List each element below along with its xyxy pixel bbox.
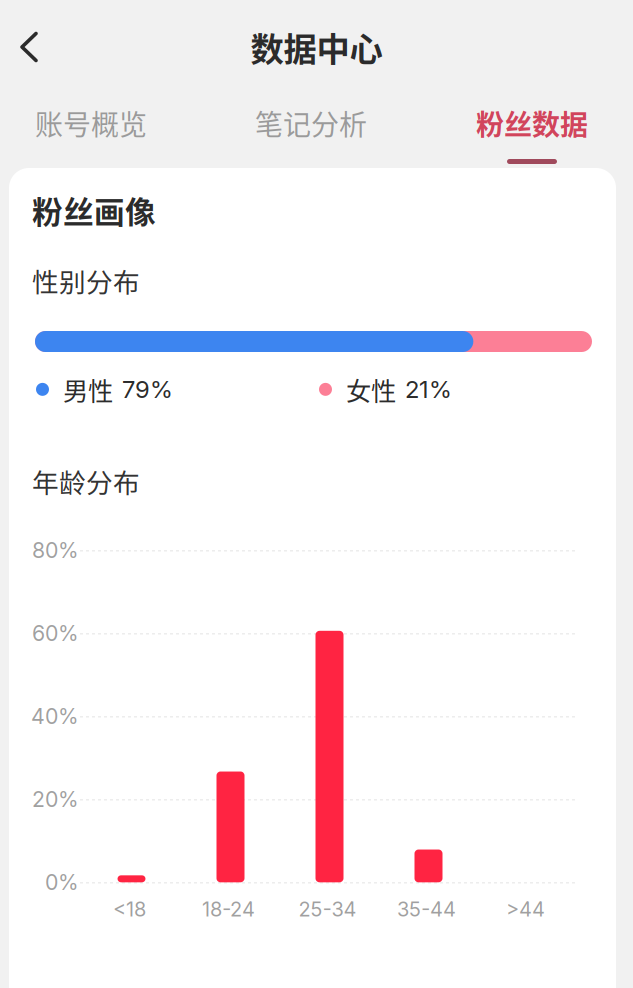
staticText: 账号概览 (35, 103, 147, 143)
staticText: <18 (113, 897, 146, 921)
staticText: 18-24 (202, 897, 255, 921)
staticText: 笔记分析 (255, 103, 367, 143)
button[interactable]: 账号概览 (16, 94, 166, 168)
staticText: 粉丝画像 (32, 188, 156, 232)
staticText: 79% (122, 375, 173, 404)
staticText: 女性 (346, 371, 396, 408)
staticText: 21% (405, 375, 452, 404)
button[interactable]: 笔记分析 (236, 94, 386, 168)
staticText: 粉丝数据 (476, 103, 588, 143)
staticText: 40% (31, 703, 79, 729)
staticText: 60% (32, 620, 79, 646)
staticText: 年龄分布 (32, 462, 140, 500)
button[interactable]: 粉丝数据 (457, 94, 607, 168)
staticText: 数据中心 (250, 23, 382, 71)
staticText: 35-44 (397, 897, 456, 921)
staticText: 0% (45, 869, 79, 895)
staticText: 性别分布 (32, 261, 140, 300)
button[interactable]: Back (0, 18, 58, 76)
staticText: 80% (32, 537, 79, 563)
staticText: >44 (506, 897, 545, 921)
staticText: 男性 (63, 371, 113, 408)
staticText: 20% (32, 786, 79, 812)
staticText: 25-34 (298, 897, 356, 921)
